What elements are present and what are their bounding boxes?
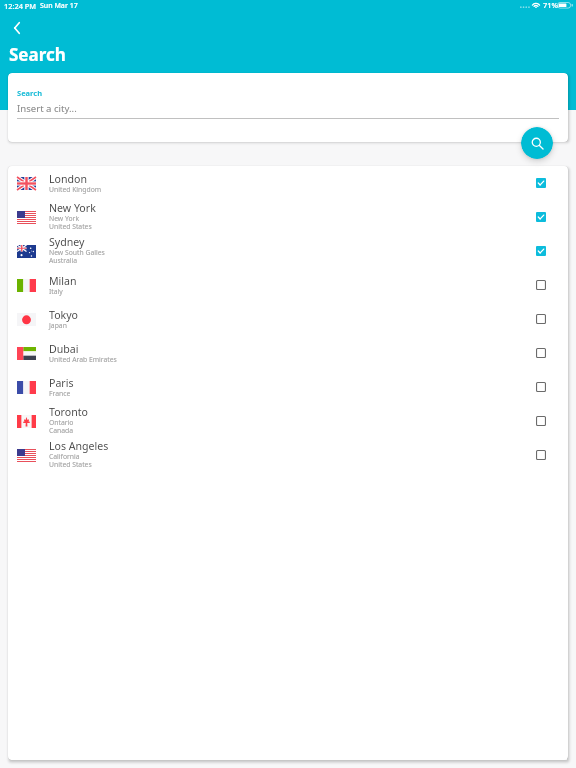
staticText: London bbox=[49, 172, 87, 186]
staticText: Search bbox=[17, 88, 43, 98]
staticText: Insert a city... bbox=[17, 102, 77, 115]
button[interactable]: London bbox=[8, 166, 568, 200]
button[interactable]: Tokyo bbox=[8, 302, 568, 336]
staticText: United Arab Emirates bbox=[49, 355, 117, 364]
button[interactable]: Select city bbox=[531, 343, 551, 363]
staticText: Los Angeles bbox=[49, 439, 109, 453]
staticText: Ontario bbox=[49, 418, 74, 427]
button[interactable]: Select city bbox=[531, 445, 551, 465]
staticText: United States bbox=[49, 460, 92, 469]
button[interactable]: Sydney bbox=[8, 234, 568, 268]
staticText: France bbox=[49, 389, 71, 398]
staticText: Sun Mar 17 bbox=[40, 1, 78, 11]
staticText: 71% bbox=[543, 0, 558, 10]
staticText: United Kingdom bbox=[49, 185, 102, 194]
staticText: California bbox=[49, 452, 80, 461]
staticText: Canada bbox=[49, 426, 74, 435]
staticText: Paris bbox=[49, 376, 74, 390]
staticText: Milan bbox=[49, 274, 77, 288]
button[interactable]: Dubai bbox=[8, 336, 568, 370]
button[interactable]: Select city bbox=[531, 309, 551, 329]
button[interactable]: Paris bbox=[8, 370, 568, 404]
staticText: Tokyo bbox=[49, 308, 79, 322]
button[interactable]: Insert a city... bbox=[17, 102, 559, 124]
button[interactable]: Search bbox=[521, 127, 553, 159]
staticText: New South Galles bbox=[49, 248, 105, 257]
button[interactable]: Select city bbox=[531, 241, 551, 261]
button[interactable]: Select city bbox=[531, 173, 551, 193]
staticText: Search bbox=[9, 43, 66, 66]
staticText: Toronto bbox=[49, 405, 88, 419]
staticText: Dubai bbox=[49, 342, 79, 356]
button[interactable]: Back bbox=[3, 14, 30, 41]
staticText: 12:24 PM bbox=[4, 1, 37, 11]
button[interactable]: Select city bbox=[531, 377, 551, 397]
button[interactable]: Los Angeles bbox=[8, 438, 568, 472]
button[interactable]: Toronto bbox=[8, 404, 568, 438]
staticText: Sydney bbox=[49, 235, 85, 249]
staticText: Italy bbox=[49, 287, 63, 296]
button[interactable]: Milan bbox=[8, 268, 568, 302]
staticText: New York bbox=[49, 214, 80, 223]
staticText: Australia bbox=[49, 256, 78, 265]
button[interactable]: New York bbox=[8, 200, 568, 234]
button[interactable]: Select city bbox=[531, 207, 551, 227]
staticText: New York bbox=[49, 201, 96, 215]
staticText: Japan bbox=[49, 321, 67, 330]
staticText: United States bbox=[49, 222, 92, 231]
button[interactable]: Select city bbox=[531, 411, 551, 431]
button[interactable]: Select city bbox=[531, 275, 551, 295]
